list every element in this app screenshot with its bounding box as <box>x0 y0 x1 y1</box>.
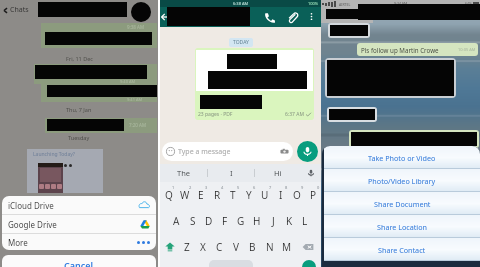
button[interactable]: Photo/Video Library <box>324 169 480 192</box>
staticText: 10:05 AM <box>458 47 476 52</box>
staticText: 0 <box>317 185 320 190</box>
button[interactable]: More <box>2 234 156 250</box>
staticText: 6 <box>253 185 256 190</box>
button[interactable]: Voice input <box>301 164 321 182</box>
button[interactable]: 23 pages · PDF <box>195 48 314 120</box>
staticText: 2 <box>189 185 192 190</box>
staticText: 9 <box>301 185 304 190</box>
staticText: Cancel <box>64 259 94 267</box>
button[interactable]: H <box>249 208 265 234</box>
staticText: 8 <box>285 185 288 190</box>
button[interactable]: R <box>209 182 225 208</box>
staticText: Z <box>184 240 190 254</box>
button[interactable]: Shift <box>160 234 179 260</box>
button[interactable]: Attach <box>286 11 299 24</box>
staticText: More <box>8 237 28 248</box>
staticText: V <box>233 240 239 254</box>
button[interactable]: Cancel <box>2 255 156 267</box>
button[interactable]: D <box>201 208 217 234</box>
button[interactable]: Q <box>160 182 177 208</box>
button[interactable]: T <box>225 182 241 208</box>
button[interactable]: Chats <box>0 0 158 20</box>
button[interactable]: S <box>185 208 201 234</box>
button[interactable]: O <box>289 182 305 208</box>
button[interactable]: P <box>305 182 321 208</box>
button[interactable]: Back <box>158 11 170 23</box>
staticText: R <box>214 188 221 202</box>
button[interactable]: G <box>233 208 249 234</box>
button[interactable]: I <box>208 164 254 182</box>
staticText: G <box>237 214 245 228</box>
button[interactable]: C <box>211 234 227 260</box>
button[interactable]: Call <box>263 11 276 24</box>
button[interactable]: Backspace <box>295 234 321 260</box>
button[interactable]: Share Location <box>324 215 480 238</box>
button[interactable]: Take Photo or Video <box>324 146 480 169</box>
staticText: Thu, 7 Jan <box>66 106 92 113</box>
staticText: M <box>282 240 292 254</box>
staticText: I <box>279 188 283 202</box>
staticText: Launching Today? <box>33 151 76 158</box>
staticText: Take Photo or Video <box>368 153 436 163</box>
staticText: 9:34 AM <box>394 1 408 6</box>
staticText: K <box>286 214 293 228</box>
button[interactable]: B <box>244 234 261 260</box>
staticText: A <box>173 214 180 228</box>
button[interactable]: Google Drive <box>2 215 156 233</box>
button[interactable]: N <box>261 234 278 260</box>
button[interactable]: V <box>227 234 244 260</box>
staticText: 23 pages · PDF <box>198 111 233 118</box>
button[interactable]: Hi <box>255 164 301 182</box>
staticText: L <box>302 214 308 228</box>
staticText: O <box>293 188 301 202</box>
button[interactable]: U <box>257 182 273 208</box>
button[interactable]: Share Contact <box>324 238 480 261</box>
button[interactable]: E <box>193 182 209 208</box>
staticText: 9:38 AM <box>127 24 145 30</box>
staticText: J <box>272 214 275 228</box>
button[interactable]: iCloud Drive <box>2 196 156 214</box>
button[interactable]: Type a message <box>162 142 293 161</box>
button[interactable]: Voice message <box>297 141 318 162</box>
button[interactable]: F <box>217 208 233 234</box>
staticText: 3 <box>205 185 208 190</box>
staticText: B <box>249 240 256 254</box>
staticText: 4 <box>221 185 224 190</box>
staticText: E <box>198 188 204 202</box>
staticText: AIRTEL <box>339 2 351 7</box>
button[interactable]: Pls follow up Martin Crowe <box>357 43 478 56</box>
button[interactable]: L <box>297 208 313 234</box>
staticText: 6:37 AM <box>285 111 304 118</box>
staticText: I <box>230 168 233 178</box>
staticText: TODAY <box>233 39 249 46</box>
staticText: U <box>261 188 269 202</box>
button[interactable]: Space <box>209 260 253 267</box>
button[interactable]: More options <box>306 11 317 22</box>
staticText: Chats <box>10 5 29 15</box>
staticText: 6:38 AM <box>233 1 249 6</box>
button[interactable]: I <box>273 182 289 208</box>
button[interactable]: The <box>160 164 207 182</box>
button[interactable]: K <box>281 208 297 234</box>
button[interactable]: M <box>278 234 295 260</box>
button[interactable]: W <box>177 182 193 208</box>
staticText: 9:41 AM <box>127 97 143 102</box>
staticText: X <box>200 240 206 254</box>
staticText: S <box>190 214 196 228</box>
button[interactable]: X <box>195 234 211 260</box>
staticText: 100% <box>308 1 319 6</box>
button[interactable]: J <box>265 208 281 234</box>
button[interactable]: Enter <box>302 260 316 267</box>
staticText: 9:40 AM <box>120 79 136 84</box>
button[interactable]: Y <box>241 182 257 208</box>
staticText: Hi <box>274 168 282 178</box>
staticText: N <box>266 240 274 254</box>
staticText: Share Document <box>374 199 431 209</box>
staticText: 5 <box>237 185 240 190</box>
button[interactable]: Share Document <box>324 192 480 215</box>
staticText: P <box>310 188 317 202</box>
button[interactable]: A <box>168 208 185 234</box>
staticText: Q <box>165 188 173 202</box>
button[interactable]: Z <box>179 234 195 260</box>
staticText: Type a message <box>178 147 231 157</box>
